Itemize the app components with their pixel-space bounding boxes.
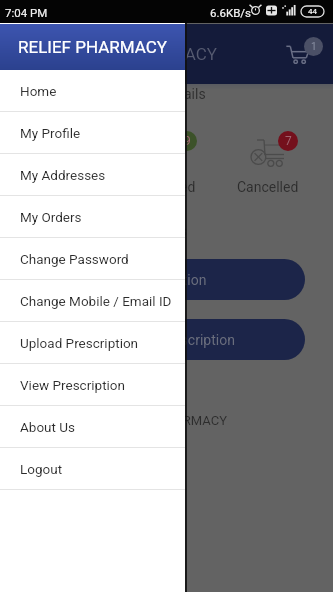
staticText: RELIEF PHARMACY (18, 37, 168, 57)
staticText: View Prescription (20, 377, 125, 393)
staticText: RELIEF PHARMACY (113, 413, 227, 428)
staticText: Change Mobile / Email ID (20, 293, 172, 309)
staticText: 9 (184, 134, 191, 148)
button[interactable]: My Orders (0, 196, 185, 238)
staticText: My Profile (20, 125, 81, 141)
button[interactable]: Cart (285, 44, 309, 67)
button[interactable]: About Us (0, 406, 185, 448)
staticText: Cancelled (237, 179, 299, 195)
staticText: 1 (311, 41, 317, 53)
button[interactable]: View Prescription (0, 364, 185, 406)
staticText: 44 (308, 7, 317, 16)
button[interactable]: Upload Prescription (28, 259, 305, 300)
button[interactable]: My Profile (0, 112, 185, 154)
button[interactable]: Change Password (0, 238, 185, 280)
button[interactable]: Open navigation menu (16, 42, 40, 66)
button[interactable]: 9 (117, 130, 217, 192)
button[interactable]: 7 (218, 130, 318, 192)
staticText: Others (146, 223, 188, 239)
staticText: Home (20, 83, 57, 99)
staticText: Pending (41, 179, 92, 195)
button[interactable]: Home (0, 70, 185, 112)
button[interactable]: Change Mobile / Email ID (0, 280, 185, 322)
staticText: RELIEF PHARMACY (68, 44, 218, 64)
staticText: My Orders (20, 209, 82, 225)
button[interactable]: View Prescription (28, 319, 305, 360)
staticText: My Addresses (20, 167, 106, 183)
staticText: 7:04 PM (5, 6, 48, 19)
staticText: 6.6KB/s (210, 6, 252, 19)
button[interactable]: 3 (16, 130, 116, 192)
staticText: View Prescription (126, 332, 235, 348)
staticText: Delivered (138, 179, 196, 195)
staticText: 7 (285, 134, 292, 148)
staticText: About Us (20, 419, 76, 435)
staticText: Logout (20, 461, 63, 477)
staticText: Change Password (20, 251, 129, 267)
button[interactable]: My Addresses (0, 154, 185, 196)
staticText: Upload Prescription (20, 335, 139, 351)
staticText: Upload Prescription (84, 272, 207, 288)
staticText: Order Details (125, 86, 206, 102)
button[interactable]: Upload Prescription (0, 322, 185, 364)
button[interactable]: Logout (0, 448, 185, 490)
